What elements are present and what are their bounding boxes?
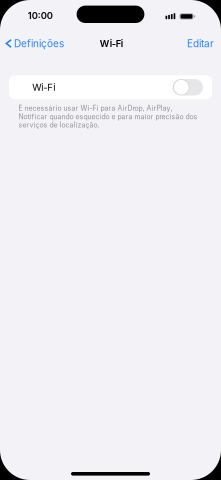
staticText: Wi-Fi bbox=[100, 38, 123, 49]
button[interactable]: Editar bbox=[181, 33, 221, 54]
staticText: Definições bbox=[14, 37, 64, 50]
staticText: Editar bbox=[187, 37, 214, 50]
staticText: Wi-Fi bbox=[32, 81, 55, 93]
button[interactable]: Definições bbox=[0, 33, 69, 54]
staticText: É necessário usar Wi-Fi para AirDrop, Ai… bbox=[19, 104, 198, 129]
button[interactable]: Wi-Fi bbox=[9, 75, 212, 99]
staticText: 10:00 bbox=[28, 10, 53, 21]
